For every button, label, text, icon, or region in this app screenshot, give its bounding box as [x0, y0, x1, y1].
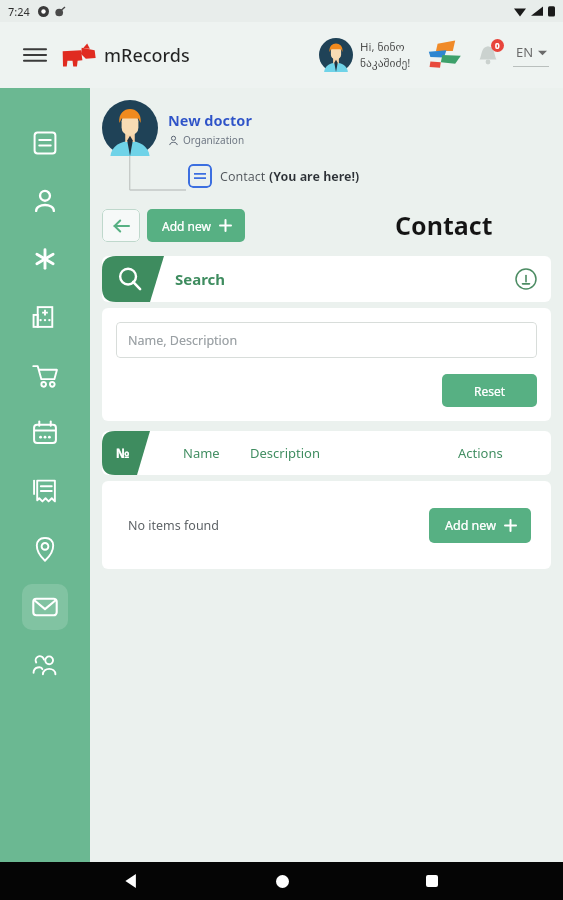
staticText: (You are here!) — [269, 168, 360, 185]
staticText: Add new — [162, 218, 211, 234]
button[interactable]: Home — [262, 862, 302, 900]
button[interactable]: Contacts — [22, 642, 68, 688]
staticText: EN — [516, 43, 534, 61]
staticText: Organization — [183, 133, 245, 147]
button[interactable]: Info — [515, 268, 537, 290]
button[interactable]: Patients — [22, 178, 68, 224]
button[interactable]: Menu — [18, 38, 52, 72]
button[interactable]: Clinic — [22, 294, 68, 340]
button[interactable]: Name, Description — [116, 322, 537, 358]
button[interactable]: Calendar — [22, 410, 68, 456]
button[interactable]: Notifications — [471, 38, 505, 72]
button[interactable]: Hi, ნინო — [319, 38, 411, 72]
staticText: 0 — [495, 40, 500, 51]
button[interactable]: EN — [513, 43, 549, 67]
button[interactable]: Search — [102, 256, 164, 302]
staticText: Contact — [220, 168, 269, 185]
button[interactable]: Documents — [423, 34, 465, 76]
button[interactable]: Add new — [147, 209, 245, 242]
staticText: Contact — [395, 208, 493, 242]
button[interactable]: Recents — [412, 862, 452, 900]
button[interactable]: Medical — [22, 236, 68, 282]
staticText: Name, Description — [128, 332, 238, 349]
staticText: mRecords — [104, 43, 190, 68]
button[interactable]: Add new — [429, 508, 531, 543]
button[interactable]: New doctor — [168, 110, 252, 130]
button[interactable]: Orders — [22, 352, 68, 398]
button[interactable]: Records — [22, 120, 68, 166]
button[interactable]: Back — [102, 209, 140, 242]
button[interactable]: Messages — [22, 584, 68, 630]
staticText: № — [116, 444, 130, 462]
button[interactable]: Locations — [22, 526, 68, 572]
staticText: Reset — [474, 383, 506, 399]
button[interactable]: Reset — [442, 374, 537, 407]
staticText: Hi, ნინო — [360, 39, 405, 55]
button[interactable]: Invoices — [22, 468, 68, 514]
button[interactable]: Description — [250, 444, 320, 462]
staticText: No items found — [128, 517, 220, 534]
staticText: ნაკაშიძე! — [360, 55, 411, 71]
button[interactable]: Name — [183, 444, 220, 462]
staticText: 7:24 — [8, 4, 30, 19]
staticText: Add new — [445, 517, 496, 534]
staticText: Search — [175, 269, 226, 289]
staticText: Actions — [458, 444, 503, 462]
button[interactable]: Back — [111, 862, 151, 900]
